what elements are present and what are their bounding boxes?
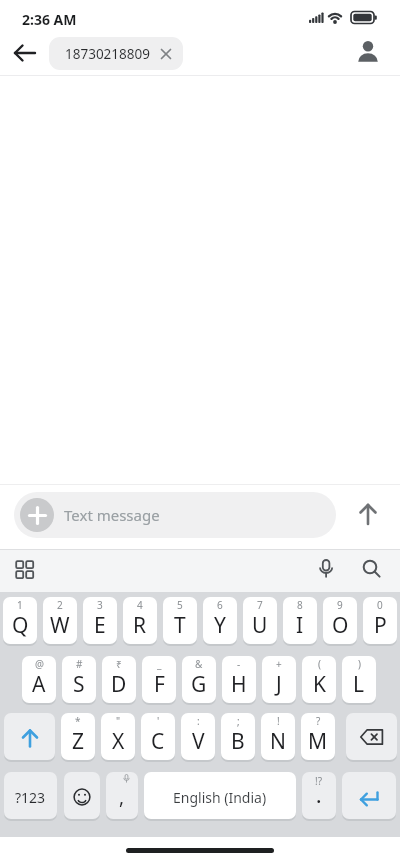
button[interactable]: [4, 713, 55, 762]
button[interactable]: ': [141, 713, 175, 762]
button[interactable]: @: [22, 656, 56, 705]
staticText: M: [308, 727, 328, 756]
staticText: ?: [316, 714, 321, 728]
staticText: ?123: [15, 788, 46, 807]
staticText: I: [296, 611, 304, 640]
button[interactable]: #: [62, 656, 96, 705]
staticText: Y: [214, 611, 226, 640]
button[interactable]: [356, 502, 380, 528]
staticText: N: [270, 727, 286, 756]
staticText: *: [75, 714, 81, 728]
staticText: !: [277, 714, 280, 728]
staticText: G: [191, 670, 207, 699]
staticText: K: [313, 670, 326, 699]
button[interactable]: *: [61, 713, 95, 762]
button[interactable]: -: [222, 656, 256, 705]
staticText: 4: [137, 598, 143, 612]
staticText: P: [374, 611, 387, 640]
staticText: D: [111, 670, 127, 699]
staticText: ): [358, 657, 361, 671]
button[interactable]: [64, 772, 100, 821]
button[interactable]: 18730218809: [49, 37, 183, 70]
button[interactable]: ;: [221, 713, 255, 762]
staticText: _: [157, 657, 162, 671]
staticText: ': [157, 714, 160, 728]
staticText: .: [316, 782, 322, 809]
staticText: English (India): [173, 788, 267, 807]
button[interactable]: [15, 560, 35, 580]
button[interactable]: 7: [243, 597, 277, 646]
staticText: 2: [57, 598, 63, 612]
staticText: 1: [17, 598, 23, 612]
button[interactable]: 2: [43, 597, 77, 646]
button[interactable]: 8: [283, 597, 317, 646]
button[interactable]: [346, 713, 397, 762]
button[interactable]: 0: [363, 597, 397, 646]
staticText: F: [154, 670, 165, 699]
staticText: 9: [337, 598, 343, 612]
staticText: 6: [217, 598, 223, 612]
button[interactable]: !: [261, 713, 295, 762]
button[interactable]: ?: [301, 713, 335, 762]
staticText: 18730218809: [65, 45, 150, 63]
staticText: B: [231, 727, 245, 756]
staticText: 2:36 AM: [22, 10, 77, 29]
staticText: T: [174, 611, 186, 640]
button[interactable]: ): [342, 656, 376, 705]
staticText: W: [50, 611, 70, 640]
button[interactable]: Text message: [14, 492, 336, 538]
button[interactable]: 5: [163, 597, 197, 646]
button[interactable]: [355, 40, 381, 64]
button[interactable]: (: [302, 656, 336, 705]
staticText: S: [73, 670, 85, 699]
button[interactable]: English (India): [144, 772, 296, 821]
button[interactable]: [342, 772, 396, 821]
button[interactable]: _: [142, 656, 176, 705]
button[interactable]: [6, 44, 44, 62]
button[interactable]: 6: [203, 597, 237, 646]
staticText: ,: [119, 784, 125, 810]
button[interactable]: 4: [123, 597, 157, 646]
button[interactable]: !?: [302, 772, 336, 821]
staticText: @: [35, 657, 44, 671]
button[interactable]: ": [101, 713, 135, 762]
staticText: C: [151, 727, 165, 756]
staticText: #: [76, 657, 83, 671]
staticText: Z: [72, 727, 85, 756]
button[interactable]: 1: [3, 597, 37, 646]
button[interactable]: ₹: [102, 656, 136, 705]
staticText: ": [116, 714, 121, 728]
staticText: Q: [12, 611, 29, 640]
staticText: +: [276, 657, 282, 671]
staticText: Text message: [64, 505, 160, 525]
button[interactable]: 3: [83, 597, 117, 646]
staticText: :: [197, 714, 200, 728]
staticText: 5: [177, 598, 183, 612]
button[interactable]: [362, 559, 382, 579]
staticText: R: [133, 611, 147, 640]
staticText: &: [195, 657, 203, 671]
staticText: 7: [257, 598, 263, 612]
button[interactable]: ?123: [4, 772, 57, 821]
staticText: (: [318, 657, 321, 671]
staticText: -: [237, 657, 241, 671]
staticText: E: [94, 611, 106, 640]
button[interactable]: [316, 559, 336, 579]
staticText: ;: [237, 714, 240, 728]
staticText: X: [112, 727, 125, 756]
staticText: 0: [377, 598, 383, 612]
staticText: 8: [297, 598, 303, 612]
staticText: V: [192, 727, 205, 756]
button[interactable]: &: [182, 656, 216, 705]
staticText: L: [353, 670, 365, 699]
staticText: O: [332, 611, 349, 640]
button[interactable]: 9: [323, 597, 357, 646]
button[interactable]: +: [262, 656, 296, 705]
staticText: J: [276, 670, 282, 699]
staticText: H: [231, 670, 247, 699]
button[interactable]: :: [181, 713, 215, 762]
staticText: !?: [315, 774, 323, 788]
staticText: U: [252, 611, 268, 640]
button[interactable]: ,: [106, 772, 138, 821]
staticText: 3: [97, 598, 103, 612]
